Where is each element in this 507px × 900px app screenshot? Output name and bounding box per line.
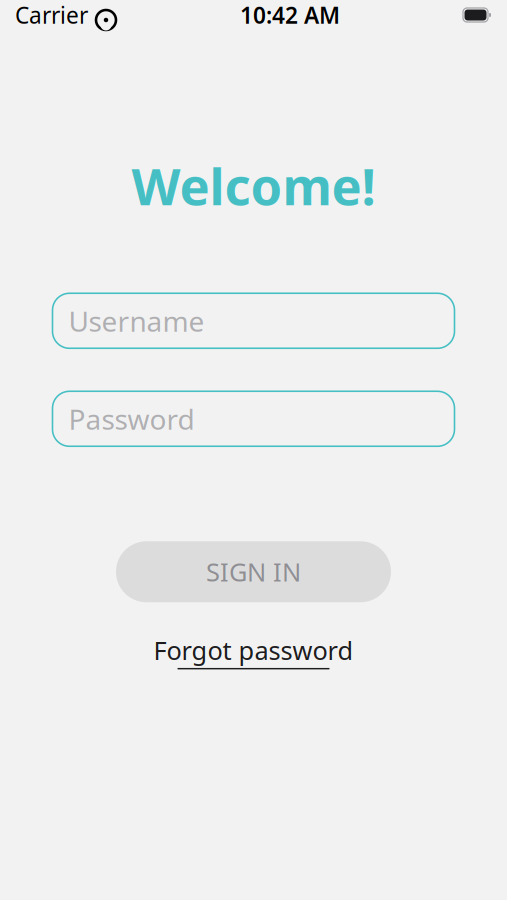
- staticText: Forgot password: [153, 633, 353, 667]
- button[interactable]: Forgot password: [153, 633, 353, 669]
- staticText: 10:42 AM: [240, 0, 340, 30]
- button[interactable]: Username: [52, 293, 454, 348]
- staticText: SIGN IN: [206, 555, 301, 589]
- button[interactable]: SIGN IN: [116, 541, 391, 602]
- staticText: Carrier: [15, 0, 88, 30]
- staticText: Welcome!: [131, 152, 375, 219]
- staticText: Username: [68, 302, 204, 339]
- staticText: Password: [68, 400, 194, 437]
- button[interactable]: Password: [52, 391, 454, 446]
